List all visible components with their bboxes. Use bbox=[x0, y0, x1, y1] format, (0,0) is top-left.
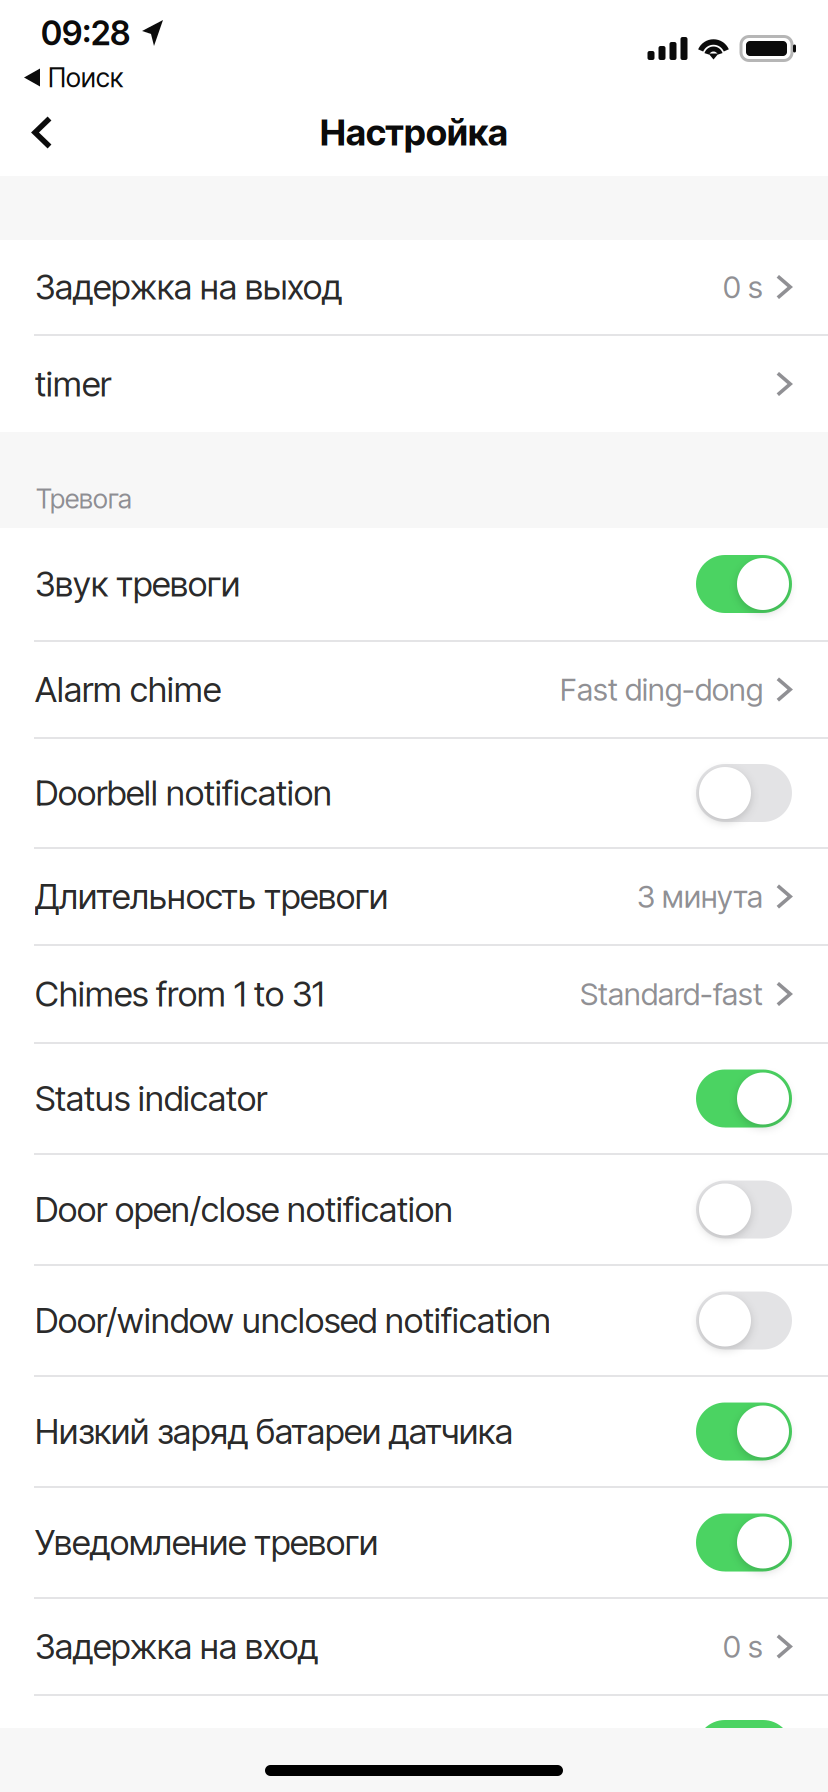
staticText: Status indicator bbox=[35, 1077, 267, 1119]
button[interactable]: Status indicator bbox=[0, 1044, 828, 1153]
staticText: 0 s bbox=[723, 1628, 763, 1665]
button[interactable]: Поиск bbox=[0, 60, 135, 95]
staticText: Doorbell notification bbox=[35, 772, 332, 814]
button[interactable]: Длительность тревоги bbox=[0, 849, 828, 944]
button[interactable]: Back bbox=[6, 98, 78, 172]
staticText: Fast ding-dong bbox=[560, 671, 763, 708]
staticText: Тревога bbox=[36, 483, 132, 515]
button[interactable]: Doorbell notification bbox=[0, 739, 828, 847]
button[interactable]: Door/window unclosed notification bbox=[0, 1266, 828, 1375]
staticText: Низкий заряд батареи датчика bbox=[35, 1410, 513, 1452]
button[interactable]: Звук тревоги bbox=[0, 528, 828, 640]
button[interactable]: Задержка на вход bbox=[0, 1599, 828, 1694]
staticText: Задержка на выход bbox=[35, 266, 342, 308]
staticText: Door/window unclosed notification bbox=[35, 1299, 551, 1341]
staticText: Chimes from 1 to 31 bbox=[35, 973, 324, 1015]
staticText: Задержка на вход bbox=[35, 1625, 318, 1667]
staticText: Door open/close notification bbox=[35, 1188, 453, 1230]
staticText: Уведомление тревоги bbox=[35, 1521, 378, 1563]
staticText: 3 минута bbox=[637, 878, 763, 915]
button[interactable]: Chimes from 1 to 31 bbox=[0, 946, 828, 1042]
button[interactable]: Alarm chime bbox=[0, 642, 828, 737]
staticText: timer bbox=[35, 363, 111, 405]
button[interactable]: Задержка на выход bbox=[0, 240, 828, 334]
button[interactable]: Door open/close notification bbox=[0, 1155, 828, 1264]
staticText: 09:28 bbox=[41, 13, 130, 53]
staticText: Alarm chime bbox=[35, 668, 221, 710]
button[interactable]: timer bbox=[0, 336, 828, 432]
staticText: Standard-fast bbox=[580, 975, 763, 1012]
button[interactable]: Уведомление тревоги bbox=[0, 1488, 828, 1597]
staticText: 0 s bbox=[723, 268, 763, 305]
button[interactable]: Низкий заряд батареи датчика bbox=[0, 1377, 828, 1486]
staticText: Длительность тревоги bbox=[35, 875, 388, 917]
staticText: Поиск bbox=[48, 61, 123, 94]
staticText: Настройка bbox=[320, 111, 508, 154]
staticText: Звук тревоги bbox=[35, 563, 240, 605]
